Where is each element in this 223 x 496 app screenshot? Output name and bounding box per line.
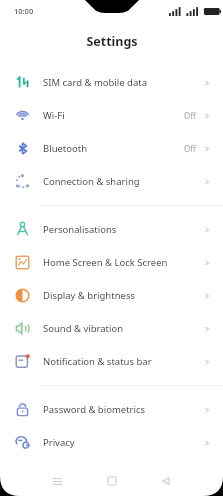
staticText: Settings bbox=[86, 33, 138, 50]
button[interactable]: Connection & sharing bbox=[0, 165, 223, 198]
button[interactable]: Notification & status bar bbox=[0, 345, 223, 378]
staticText: Sound & vibration bbox=[43, 322, 203, 335]
staticText: Off bbox=[184, 110, 196, 121]
staticText: Privacy bbox=[43, 436, 203, 449]
button[interactable]: Bluetooth bbox=[0, 132, 223, 165]
staticText: Display & brightness bbox=[43, 289, 203, 302]
button[interactable]: SIM card & mobile data bbox=[0, 66, 223, 99]
button[interactable]: Password & biometrics bbox=[0, 393, 223, 426]
staticText: Off bbox=[184, 143, 196, 154]
button[interactable]: Recents bbox=[46, 470, 68, 492]
button[interactable]: Display & brightness bbox=[0, 279, 223, 312]
staticText: Home Screen & Lock Screen bbox=[43, 256, 203, 269]
button[interactable]: Wi-Fi bbox=[0, 99, 223, 132]
button[interactable]: Back bbox=[155, 470, 177, 492]
staticText: 10:00 bbox=[14, 6, 34, 16]
staticText: SIM card & mobile data bbox=[43, 76, 203, 89]
staticText: Personalisations bbox=[43, 223, 203, 236]
button[interactable]: Privacy bbox=[0, 426, 223, 459]
staticText: Connection & sharing bbox=[43, 175, 203, 188]
staticText: Wi-Fi bbox=[43, 109, 184, 122]
staticText: Password & biometrics bbox=[43, 403, 203, 416]
button[interactable]: Home Screen & Lock Screen bbox=[0, 246, 223, 279]
button[interactable]: Home bbox=[101, 470, 123, 492]
button[interactable]: Sound & vibration bbox=[0, 312, 223, 345]
staticText: Notification & status bar bbox=[43, 355, 203, 368]
staticText: Bluetooth bbox=[43, 142, 184, 155]
button[interactable]: Personalisations bbox=[0, 213, 223, 246]
